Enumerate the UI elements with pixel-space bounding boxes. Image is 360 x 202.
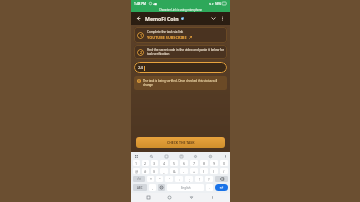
button[interactable]: grid bbox=[133, 153, 139, 159]
staticText: =\< bbox=[137, 177, 141, 181]
staticText: ⇅ ▾ bbox=[209, 2, 215, 6]
button[interactable]: Home bbox=[166, 194, 173, 201]
staticText: CHECK THE TASK bbox=[167, 140, 195, 145]
staticText: _ bbox=[163, 169, 165, 174]
button[interactable]: CHECK THE TASK bbox=[136, 137, 225, 148]
staticText: ? bbox=[208, 177, 210, 182]
staticText: ; bbox=[189, 177, 190, 182]
button[interactable]: 2 bbox=[142, 160, 149, 166]
staticText: English bbox=[181, 186, 191, 190]
staticText: Character Link is using microphone bbox=[159, 8, 202, 12]
button[interactable]: search bbox=[148, 153, 154, 159]
button[interactable]: ? bbox=[205, 176, 213, 182]
button[interactable]: 1 bbox=[133, 160, 140, 166]
staticText: $ bbox=[153, 169, 156, 174]
staticText: 1:48 PM bbox=[134, 2, 147, 6]
staticText: 1 bbox=[135, 161, 138, 166]
button[interactable]: , bbox=[149, 184, 156, 191]
staticText: " bbox=[159, 177, 161, 182]
button[interactable]: YOUTUBE SUBSCRIBE bbox=[147, 35, 192, 40]
staticText: 7 bbox=[193, 161, 196, 166]
button[interactable]: Emoji bbox=[158, 184, 165, 191]
button[interactable]: 5 bbox=[170, 160, 178, 166]
staticText: # bbox=[144, 169, 147, 174]
button[interactable]: 4 bbox=[160, 160, 168, 166]
staticText: - bbox=[183, 169, 185, 174]
button[interactable]: " bbox=[156, 176, 163, 182]
button[interactable]: - bbox=[180, 168, 188, 174]
button[interactable]: ( bbox=[200, 168, 208, 174]
button[interactable]: gif bbox=[163, 153, 169, 159]
staticText: @ bbox=[135, 169, 139, 174]
button[interactable]: 0 bbox=[220, 160, 228, 166]
staticText: 3 bbox=[153, 161, 156, 166]
staticText: & bbox=[173, 169, 176, 174]
button[interactable]: More options bbox=[218, 14, 227, 23]
button[interactable]: 9 bbox=[210, 160, 218, 166]
staticText: * bbox=[150, 177, 152, 182]
button[interactable]: ! bbox=[195, 176, 203, 182]
staticText: . bbox=[209, 185, 210, 190]
button[interactable]: Recents bbox=[145, 194, 152, 201]
button[interactable]: 8 bbox=[200, 160, 208, 166]
staticText: 4 bbox=[163, 161, 166, 166]
button[interactable]: @ bbox=[133, 168, 140, 174]
staticText: MemoFi Coin bbox=[145, 15, 179, 22]
button[interactable]: English bbox=[167, 184, 204, 191]
button[interactable]: _ bbox=[160, 168, 168, 174]
staticText: The task is being verified. Once checked… bbox=[143, 79, 224, 87]
button[interactable]: mic bbox=[222, 153, 228, 159]
button[interactable]: Back bbox=[134, 14, 143, 23]
button[interactable]: Back bbox=[188, 194, 195, 201]
button[interactable]: 3 bbox=[151, 160, 158, 166]
staticText: ( bbox=[203, 169, 205, 174]
staticText: ◂◼ bbox=[153, 2, 157, 5]
staticText: 2 bbox=[140, 50, 142, 55]
button[interactable]: 6 bbox=[180, 160, 188, 166]
staticText: + bbox=[193, 169, 196, 174]
button[interactable]: # bbox=[142, 168, 149, 174]
staticText: 9 bbox=[213, 161, 216, 166]
button[interactable]: + bbox=[190, 168, 198, 174]
button[interactable]: & bbox=[170, 168, 178, 174]
staticText: 0 bbox=[223, 161, 226, 166]
staticText: 5 bbox=[173, 161, 176, 166]
staticText: 2 bbox=[144, 161, 147, 166]
staticText: 8 bbox=[203, 161, 206, 166]
staticText: YOUTUBE SUBSCRIBE bbox=[147, 35, 187, 40]
button[interactable]: 24 bbox=[134, 62, 227, 73]
staticText: : bbox=[179, 177, 180, 182]
staticText: , bbox=[152, 185, 153, 190]
staticText: / bbox=[223, 169, 225, 174]
staticText: 6 bbox=[183, 161, 186, 166]
staticText: Complete the task via link bbox=[147, 30, 184, 34]
staticText: 1 bbox=[140, 33, 142, 38]
button[interactable]: ABC bbox=[133, 184, 147, 191]
button[interactable]: 7 bbox=[190, 160, 198, 166]
staticText: 24 bbox=[138, 65, 143, 71]
staticText: Find the secret code in the video and pa… bbox=[147, 48, 224, 56]
staticText: ) bbox=[213, 169, 215, 174]
staticText: ' bbox=[169, 177, 170, 182]
button[interactable]: 2 bbox=[134, 45, 227, 59]
button[interactable]: : bbox=[175, 176, 183, 182]
button[interactable]: 1 bbox=[134, 27, 227, 43]
staticText: 56% bbox=[215, 2, 221, 6]
staticText: ABC bbox=[137, 186, 143, 190]
button[interactable]: $ bbox=[151, 168, 158, 174]
button[interactable]: Expand bbox=[209, 14, 218, 23]
button[interactable]: ) bbox=[210, 168, 218, 174]
button[interactable]: Voice input bbox=[209, 194, 216, 201]
button[interactable]: Enter bbox=[215, 184, 228, 191]
button[interactable]: Backspace bbox=[215, 176, 228, 182]
button[interactable]: ; bbox=[185, 176, 193, 182]
button[interactable]: / bbox=[220, 168, 228, 174]
button[interactable]: * bbox=[147, 176, 154, 182]
button[interactable]: sticker bbox=[207, 153, 213, 159]
staticText: ! bbox=[199, 177, 200, 182]
button[interactable]: ' bbox=[165, 176, 173, 182]
button[interactable]: =\< bbox=[133, 176, 145, 182]
button[interactable]: . bbox=[206, 184, 213, 191]
button[interactable]: gear bbox=[192, 153, 198, 159]
button[interactable]: clip bbox=[178, 153, 184, 159]
